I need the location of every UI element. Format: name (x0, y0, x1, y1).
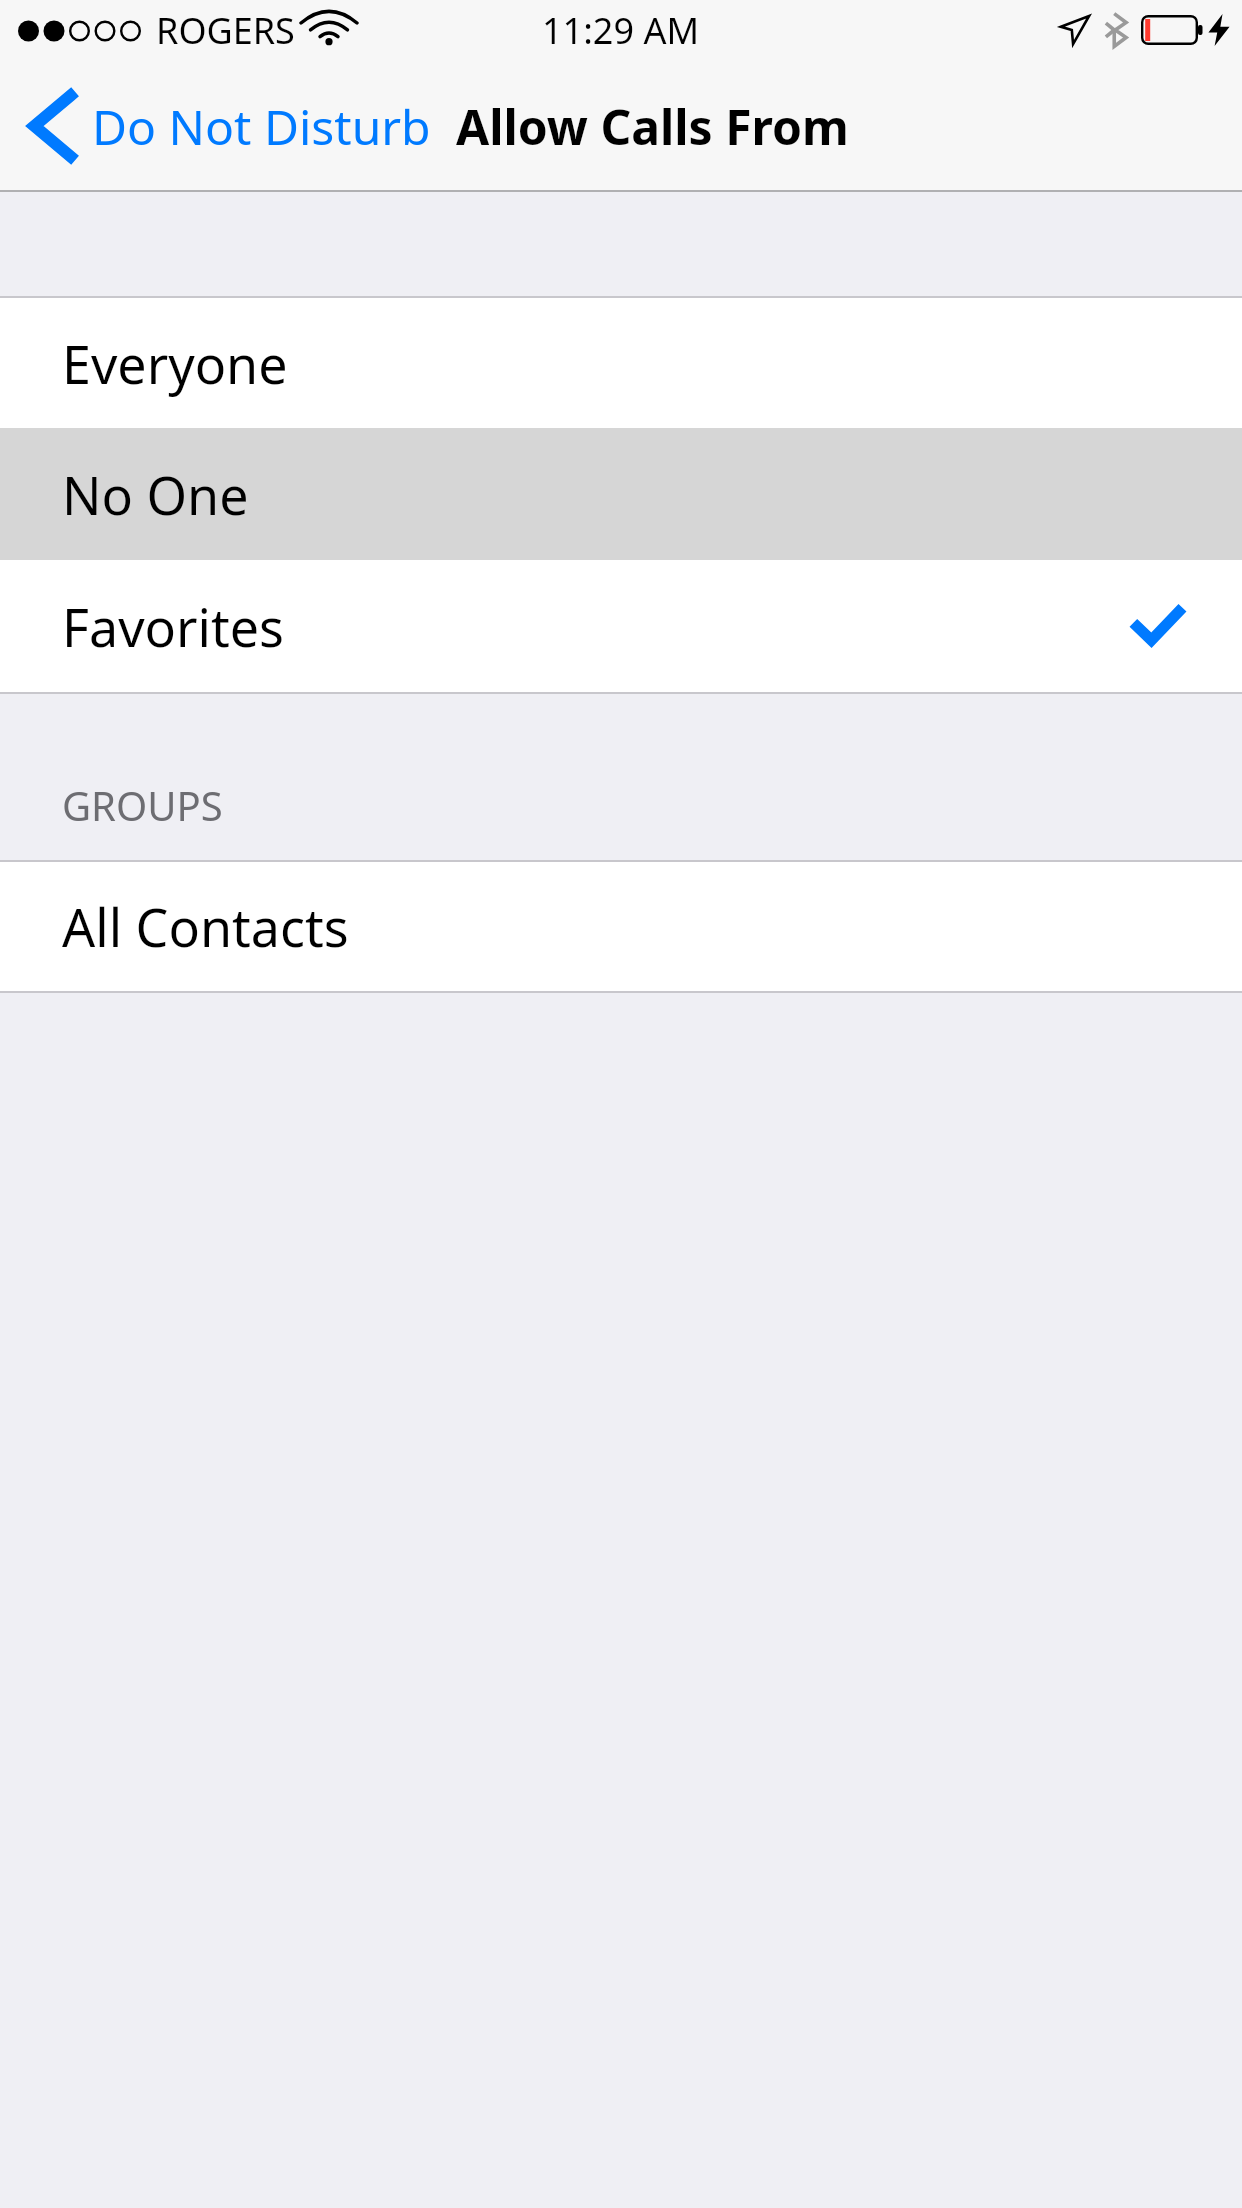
staticText: Do Not Disturb (92, 94, 431, 159)
button[interactable]: Favorites (0, 560, 1242, 692)
staticText: ROGERS (156, 6, 295, 55)
staticText: All Contacts (62, 891, 349, 962)
staticText: No One (62, 459, 249, 530)
staticText: GROUPS (62, 778, 223, 832)
button[interactable]: No One (0, 428, 1242, 560)
button[interactable]: Do Not Disturb (0, 60, 443, 192)
staticText: Allow Calls From (456, 94, 849, 159)
staticText: Everyone (62, 328, 288, 399)
button[interactable]: Everyone (0, 298, 1242, 428)
button[interactable]: All Contacts (0, 862, 1242, 991)
staticText: Favorites (62, 591, 284, 662)
staticText: 11:29 AM (542, 6, 700, 55)
